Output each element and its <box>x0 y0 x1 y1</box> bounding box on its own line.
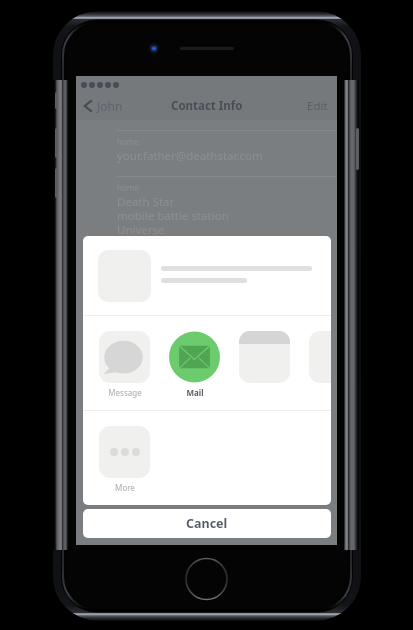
button[interactable]: Message <box>99 331 150 398</box>
staticText: Contact Info <box>171 98 243 114</box>
staticText: home <box>117 182 139 193</box>
staticText: More <box>115 482 135 493</box>
button[interactable]: Mail <box>169 331 220 398</box>
staticText: John <box>97 98 123 114</box>
button[interactable]: Cancel <box>83 509 331 538</box>
button[interactable] <box>239 331 290 387</box>
staticText: Death Star <box>117 194 175 210</box>
button[interactable]: More <box>99 426 150 493</box>
staticText: Cancel <box>186 515 228 532</box>
button[interactable]: John <box>83 98 123 114</box>
staticText: your.father@deathstar.com <box>117 148 263 164</box>
staticText: Mail <box>186 387 204 398</box>
staticText: Message <box>108 387 142 398</box>
staticText: mobile battle station <box>117 208 229 224</box>
staticText: home <box>117 136 139 147</box>
staticText: Universe <box>117 222 165 238</box>
button[interactable] <box>309 331 331 387</box>
button[interactable]: Edit <box>307 98 328 114</box>
